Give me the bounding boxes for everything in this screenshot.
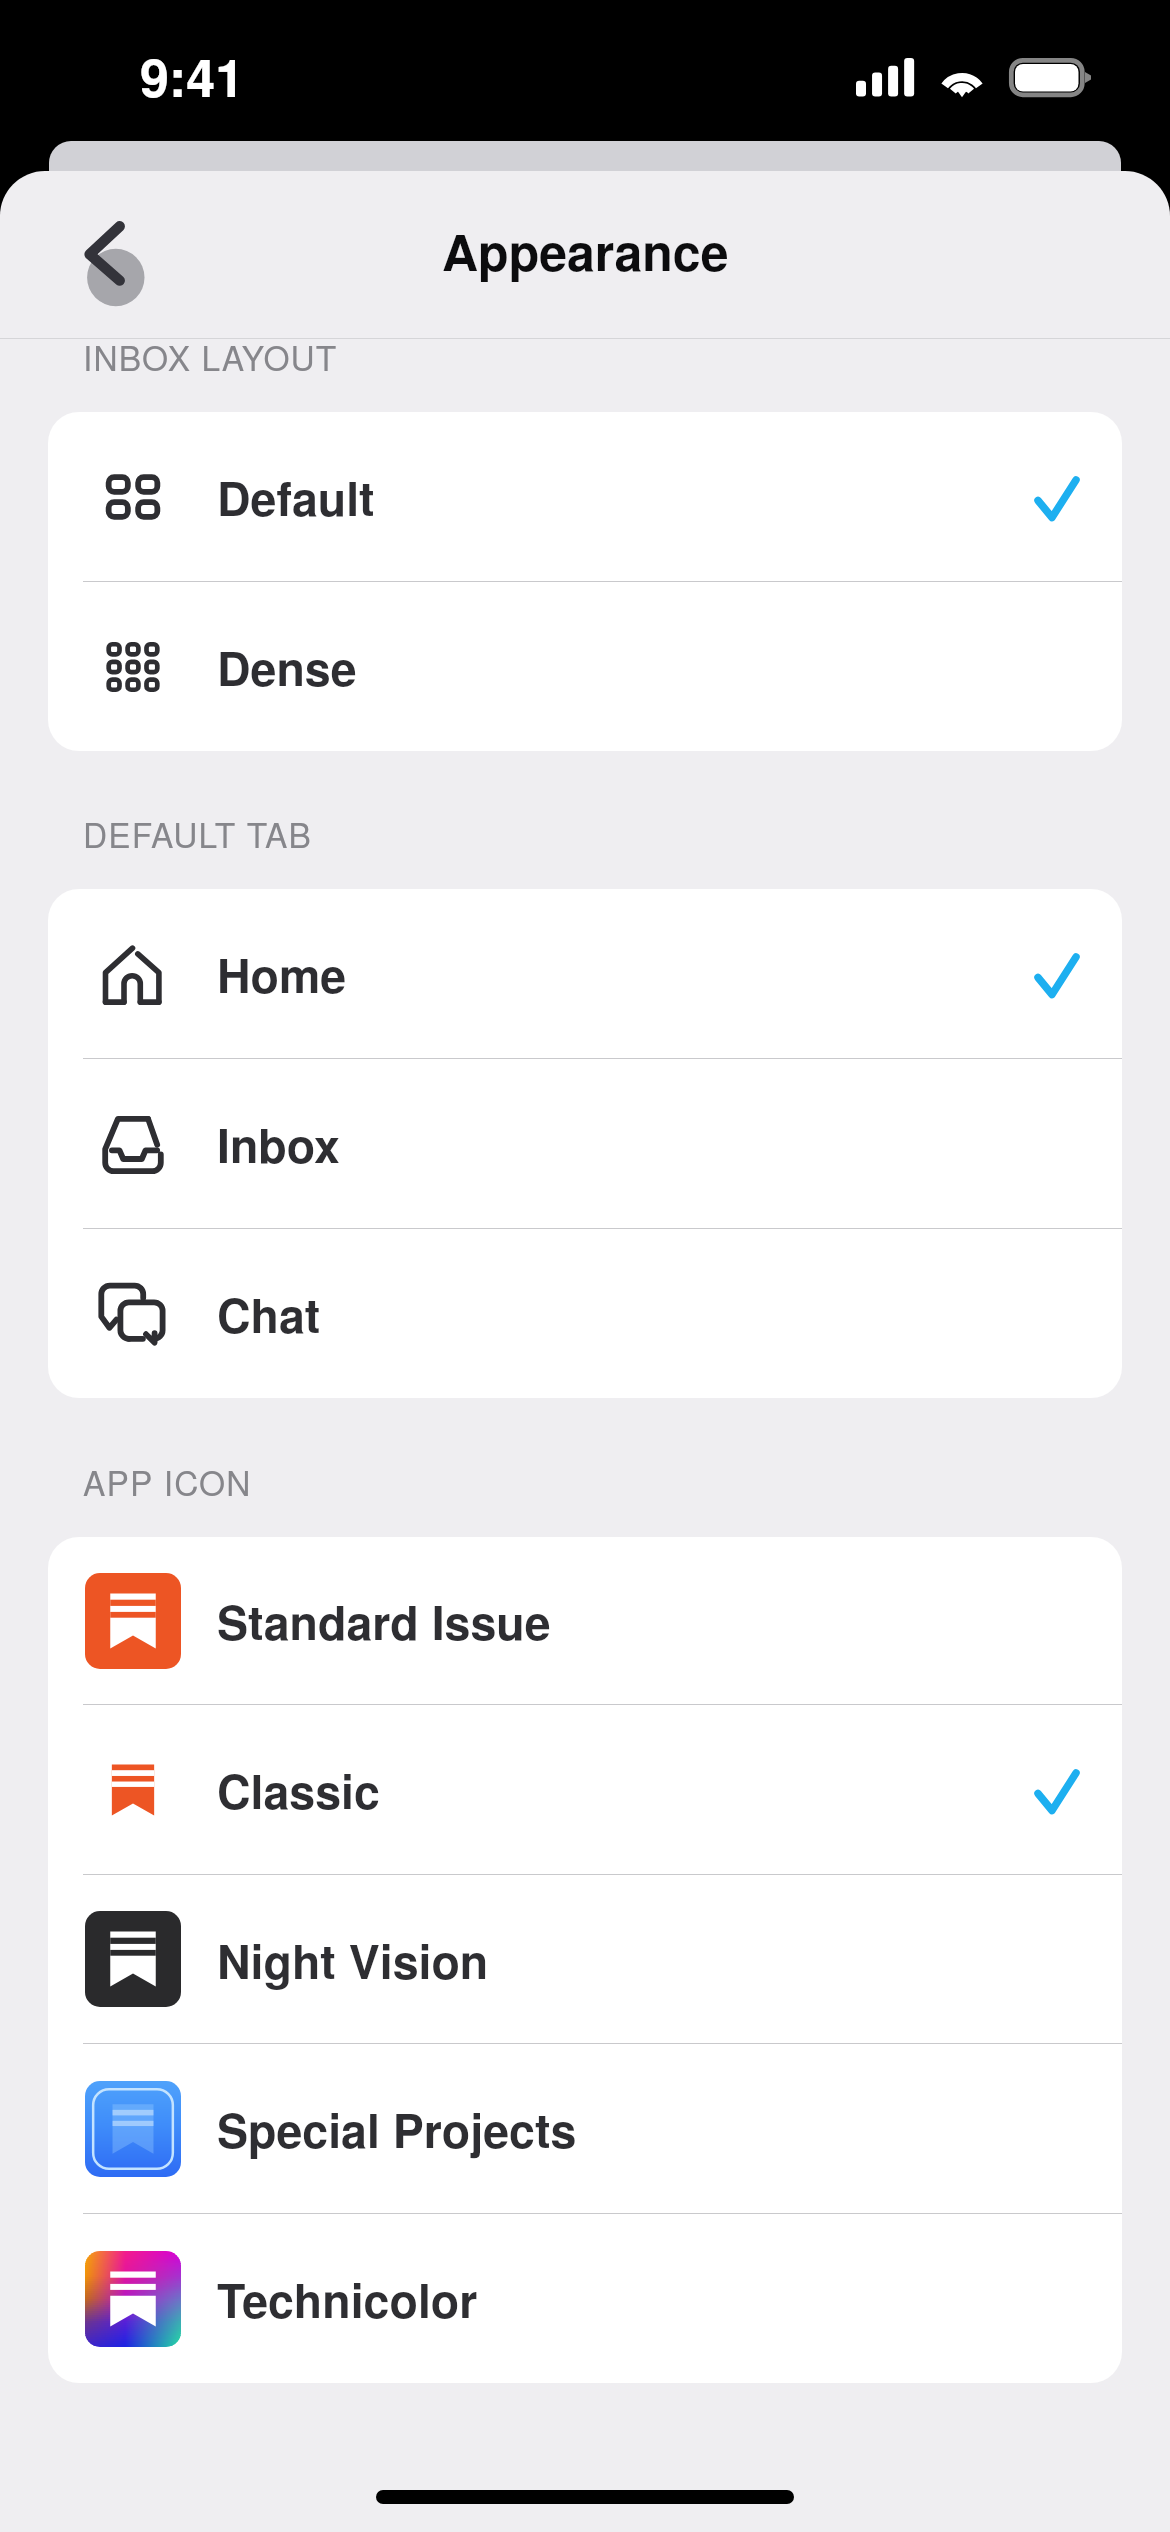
button[interactable]: Technicolor — [48, 2214, 1122, 2383]
button[interactable]: Back — [58, 200, 168, 310]
staticText: Default — [217, 464, 375, 531]
button[interactable]: Home — [48, 889, 1122, 1058]
button[interactable]: Standard Issue — [48, 1537, 1122, 1704]
staticText: DEFAULT TAB — [83, 810, 312, 858]
button[interactable]: Classic — [48, 1705, 1122, 1874]
staticText: Special Projects — [217, 2096, 577, 2163]
staticText: Home — [217, 941, 347, 1008]
staticText: Inbox — [217, 1111, 340, 1178]
button[interactable]: Night Vision — [48, 1875, 1122, 2043]
staticText: Night Vision — [217, 1927, 489, 1994]
staticText: 9:41 — [140, 38, 245, 112]
button[interactable]: Special Projects — [48, 2044, 1122, 2213]
staticText: Dense — [217, 634, 357, 701]
staticText: Chat — [217, 1281, 321, 1348]
button[interactable]: Chat — [48, 1229, 1122, 1398]
staticText: Standard Issue — [217, 1588, 551, 1655]
button[interactable]: Inbox — [48, 1059, 1122, 1228]
staticText: INBOX LAYOUT — [83, 333, 338, 381]
staticText: APP ICON — [83, 1458, 252, 1506]
staticText: Technicolor — [217, 2266, 478, 2333]
staticText: Appearance — [442, 215, 729, 287]
button[interactable]: Dense — [48, 582, 1122, 751]
button[interactable]: Default — [48, 412, 1122, 581]
staticText: Classic — [217, 1757, 380, 1824]
